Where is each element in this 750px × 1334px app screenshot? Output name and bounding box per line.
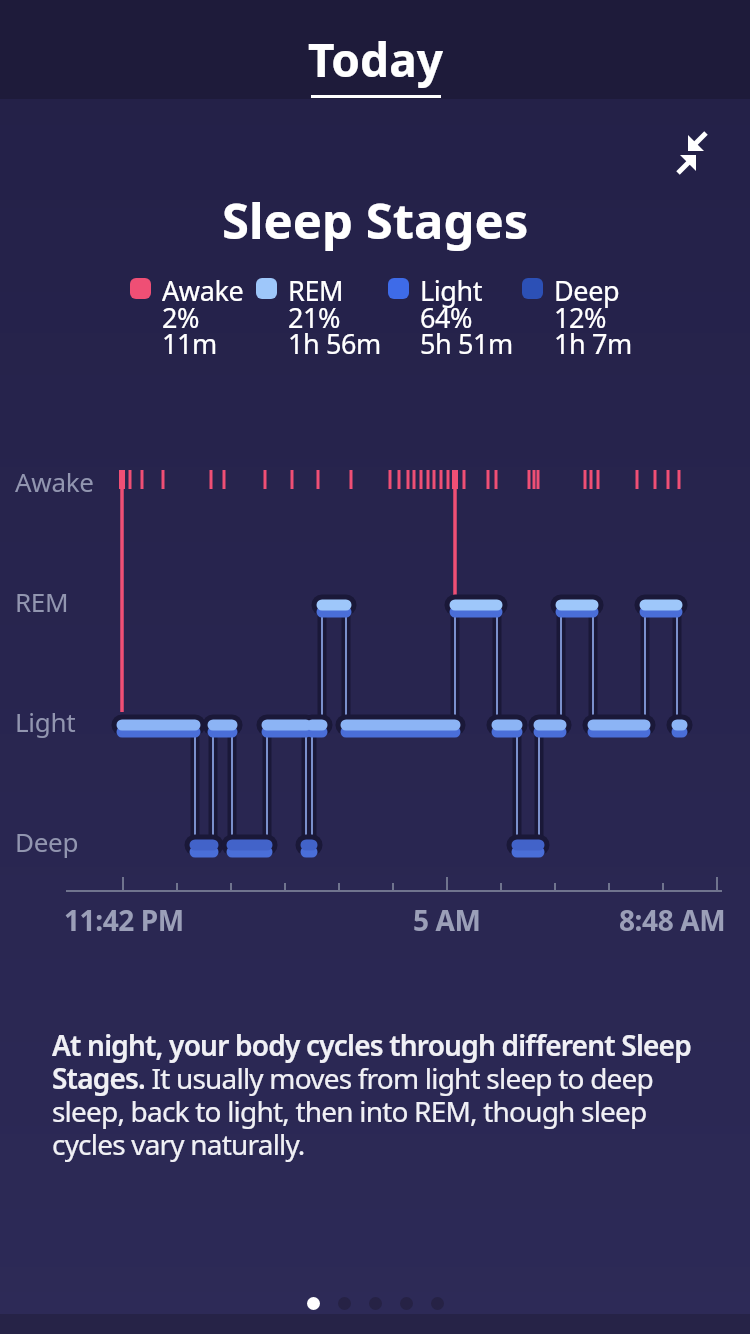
staticText: 11m [162, 325, 217, 362]
staticText: REM [288, 272, 344, 309]
staticText: Awake [15, 464, 94, 499]
staticText: Sleep Stages [222, 187, 529, 254]
staticText: 11:42 PM [64, 901, 184, 939]
staticText: 1h 7m [554, 325, 632, 362]
staticText: 5h 51m [420, 325, 513, 362]
staticText: Awake [162, 272, 244, 309]
staticText: 1h 56m [288, 325, 381, 362]
button[interactable] [369, 1297, 382, 1310]
staticText: 5 AM [413, 901, 481, 939]
button[interactable] [666, 127, 718, 179]
staticText: Today [308, 28, 443, 91]
staticText: At night, your body cycles through diffe… [52, 1026, 691, 1163]
staticText: REM [15, 584, 69, 619]
staticText: 21% [288, 299, 341, 336]
staticText: Deep [15, 824, 79, 859]
staticText: 8:48 AM [619, 901, 726, 939]
button[interactable] [338, 1297, 351, 1310]
button[interactable] [400, 1297, 413, 1310]
staticText: Light [15, 704, 76, 739]
staticText: 2% [162, 299, 200, 336]
button[interactable] [307, 1297, 320, 1310]
staticText: 64% [420, 299, 473, 336]
staticText: 12% [554, 299, 607, 336]
staticText: Deep [554, 272, 620, 309]
button[interactable] [431, 1297, 444, 1310]
staticText: Light [420, 272, 483, 309]
